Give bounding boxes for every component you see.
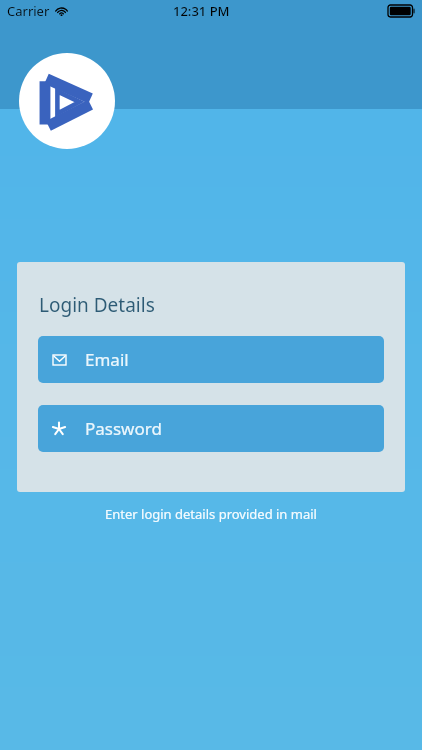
button[interactable]: Email <box>38 336 384 383</box>
staticText: Login Details <box>39 292 155 318</box>
staticText: Enter login details provided in mail <box>105 505 317 523</box>
staticText: Carrier <box>7 2 50 20</box>
button[interactable]: App logo <box>19 53 115 149</box>
button[interactable]: Password <box>38 405 384 452</box>
staticText: Password <box>85 417 162 440</box>
staticText: 12:31 PM <box>173 2 230 20</box>
staticText: Email <box>85 348 129 371</box>
